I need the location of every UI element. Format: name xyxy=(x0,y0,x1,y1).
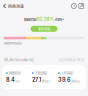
staticText: 27.1 xyxy=(32,76,41,83)
staticText: 网络延迟 xyxy=(9,71,21,75)
staticText: 8.4 xyxy=(6,76,15,83)
staticText: WLAN xyxy=(4,58,13,62)
staticText: 的用户 xyxy=(55,17,64,22)
staticText: 下载速度 xyxy=(35,71,47,75)
staticText: 超越全国 xyxy=(24,17,36,22)
button[interactable]: Share xyxy=(78,2,85,10)
staticText: 92.38% xyxy=(36,16,54,22)
button[interactable]: 网络测速 xyxy=(0,1,24,11)
button[interactable]: 重新测速 xyxy=(30,26,57,32)
staticText: ChinaNet-5G xyxy=(14,58,33,62)
button[interactable]: History xyxy=(70,2,78,10)
staticText: Mbps xyxy=(72,80,81,83)
staticText: ms xyxy=(16,80,21,83)
staticText: 重新测速 xyxy=(38,26,50,31)
staticText: 网络体验较好 xyxy=(4,41,22,45)
staticText: 上传速度 xyxy=(61,71,73,75)
staticText: Mbps xyxy=(42,80,51,83)
staticText: 39.6 xyxy=(58,76,71,83)
staticText: 2024/06/12 10:21 xyxy=(59,58,84,62)
staticText: 网络测速 xyxy=(8,3,24,9)
